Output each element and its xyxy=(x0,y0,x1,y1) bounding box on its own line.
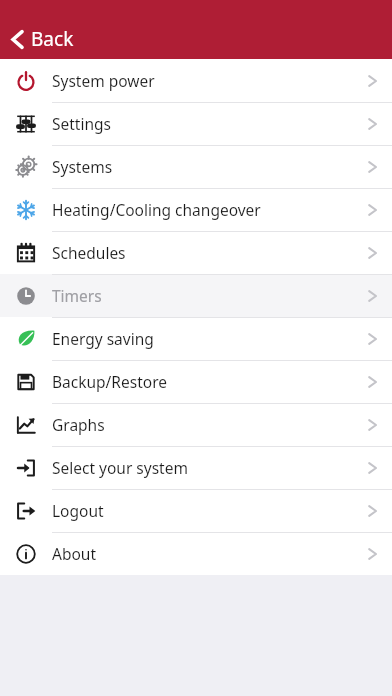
button[interactable]: Back xyxy=(5,22,80,56)
button[interactable]: Select your system xyxy=(0,446,392,489)
staticText: Graphs xyxy=(52,414,105,435)
button[interactable]: Graphs xyxy=(0,403,392,446)
staticText: System power xyxy=(52,70,155,91)
staticText: Schedules xyxy=(52,242,126,263)
button[interactable]: Schedules xyxy=(0,231,392,274)
staticText: Backup/Restore xyxy=(52,371,167,392)
button[interactable]: Timers xyxy=(0,274,392,317)
button[interactable]: Systems xyxy=(0,145,392,188)
button[interactable]: Settings xyxy=(0,102,392,145)
staticText: About xyxy=(52,543,96,564)
other: Back xyxy=(11,29,24,50)
staticText: Heating/Cooling changeover xyxy=(52,199,261,220)
staticText: Timers xyxy=(52,285,102,306)
button[interactable]: Energy saving xyxy=(0,317,392,360)
staticText: Settings xyxy=(52,113,111,134)
button[interactable]: Backup/Restore xyxy=(0,360,392,403)
staticText: Back xyxy=(31,26,74,52)
button[interactable]: Heating/Cooling changeover xyxy=(0,188,392,231)
button[interactable]: System power xyxy=(0,59,392,102)
staticText: Select your system xyxy=(52,457,188,478)
button[interactable]: About xyxy=(0,532,392,575)
button[interactable]: Logout xyxy=(0,489,392,532)
staticText: Systems xyxy=(52,156,113,177)
staticText: Logout xyxy=(52,500,104,521)
staticText: Energy saving xyxy=(52,328,154,349)
